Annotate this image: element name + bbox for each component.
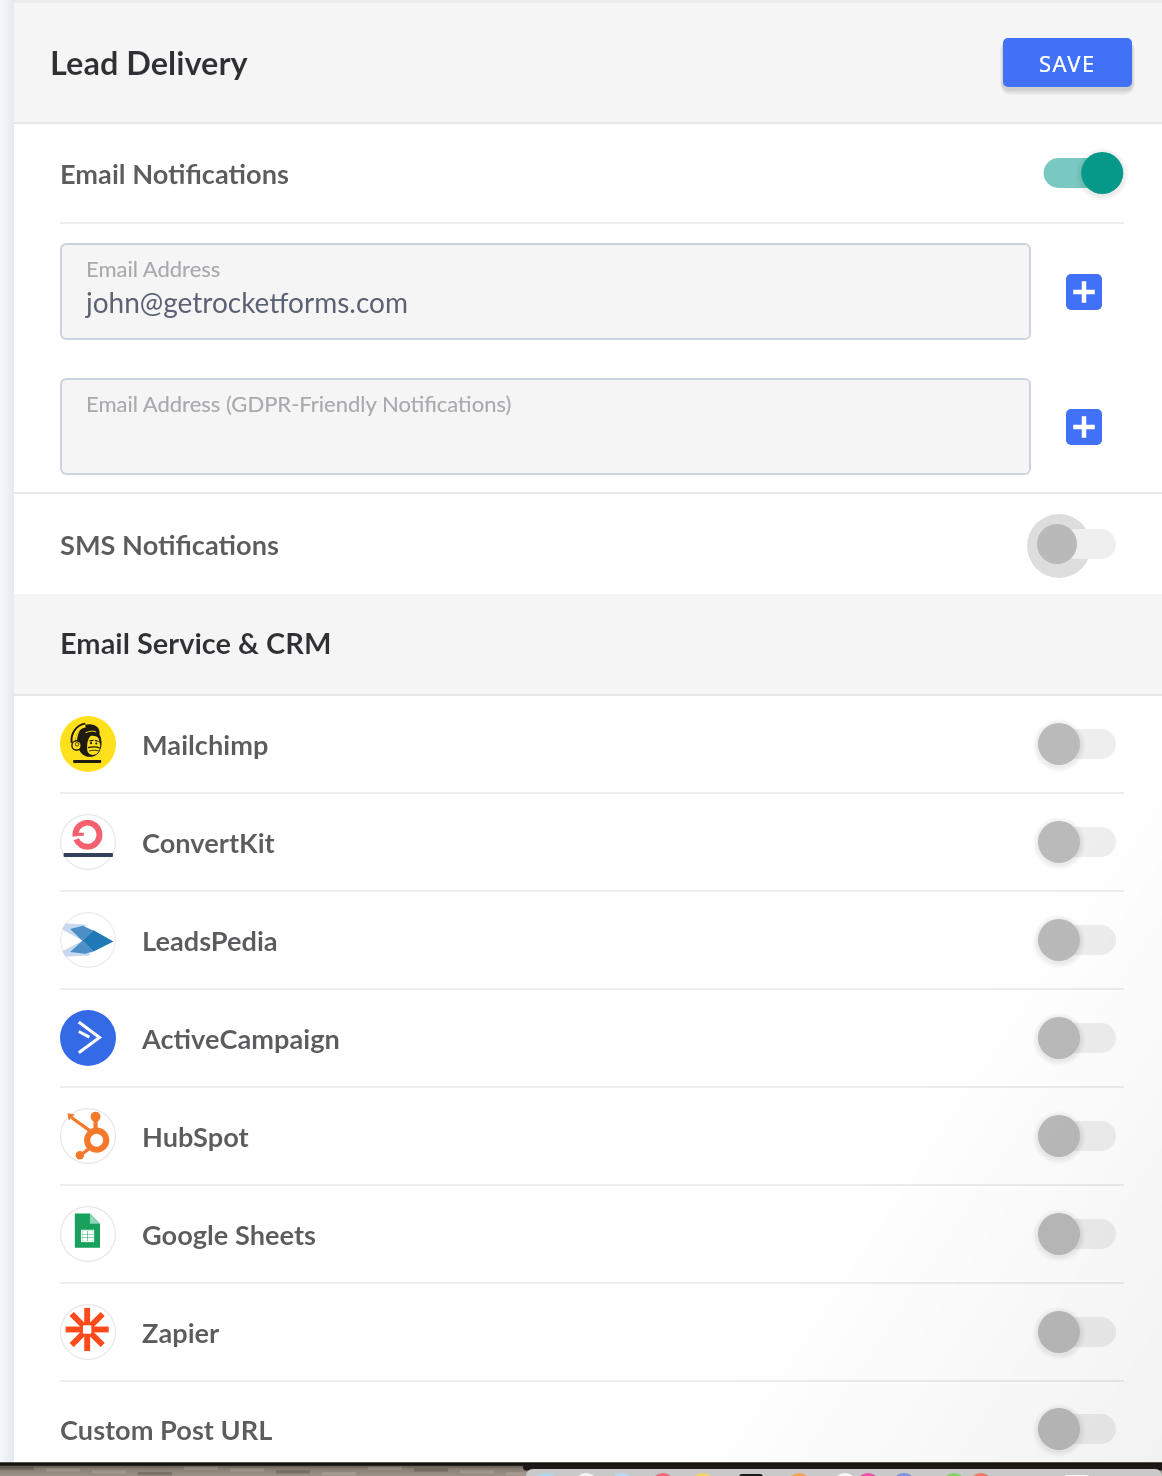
staticText: LeadsPedia [142,924,278,957]
button[interactable]: HubSpot [14,1088,1162,1184]
staticText: ConvertKit [142,826,275,859]
button[interactable]: Email Address (GDPR-Friendly Notificatio… [60,378,1031,475]
button[interactable]: Email notifications enabled [1032,138,1162,208]
button[interactable]: Add email address [1066,274,1102,310]
staticText: Email Service & CRM [60,625,332,660]
button[interactable]: Toggle off [1032,807,1162,877]
staticText: ActiveCampaign [142,1022,340,1055]
button[interactable]: ActiveCampaign [14,990,1162,1086]
staticText: Lead Delivery [50,43,248,82]
staticText: john@getrocketforms.com [86,285,408,319]
button[interactable]: Toggle off [1032,709,1162,779]
button[interactable]: Email Address [60,243,1031,340]
staticText: HubSpot [142,1120,249,1153]
staticText: Email Notifications [60,157,289,190]
button[interactable]: ConvertKit [14,794,1162,890]
button[interactable]: SAVE [1003,38,1132,87]
button[interactable]: Mailchimp [14,696,1162,792]
button[interactable]: Custom Post URL [14,1382,1162,1476]
button[interactable]: SMS Notifications [14,494,1162,594]
staticText: Custom Post URL [60,1413,273,1446]
staticText: Google Sheets [142,1218,316,1251]
staticText: Email Address [86,255,221,281]
button[interactable]: Toggle off [1032,1297,1162,1367]
button[interactable]: Toggle off [1032,1003,1162,1073]
button[interactable]: Google Sheets [14,1186,1162,1282]
button[interactable]: Toggle off [1032,1394,1162,1464]
button[interactable]: Add email address [1066,409,1102,445]
staticText: Mailchimp [142,728,269,761]
staticText: Email Address (GDPR-Friendly Notificatio… [86,390,512,416]
staticText: SMS Notifications [60,528,279,561]
staticText: Zapier [142,1316,220,1349]
button[interactable]: Toggle off [1032,1199,1162,1269]
button[interactable]: LeadsPedia [14,892,1162,988]
button[interactable]: Toggle off [1032,905,1162,975]
staticText: SAVE [1039,48,1096,78]
button[interactable]: SMS notifications disabled [1032,494,1162,594]
button[interactable]: Zapier [14,1284,1162,1380]
button[interactable]: Toggle off [1032,1101,1162,1171]
